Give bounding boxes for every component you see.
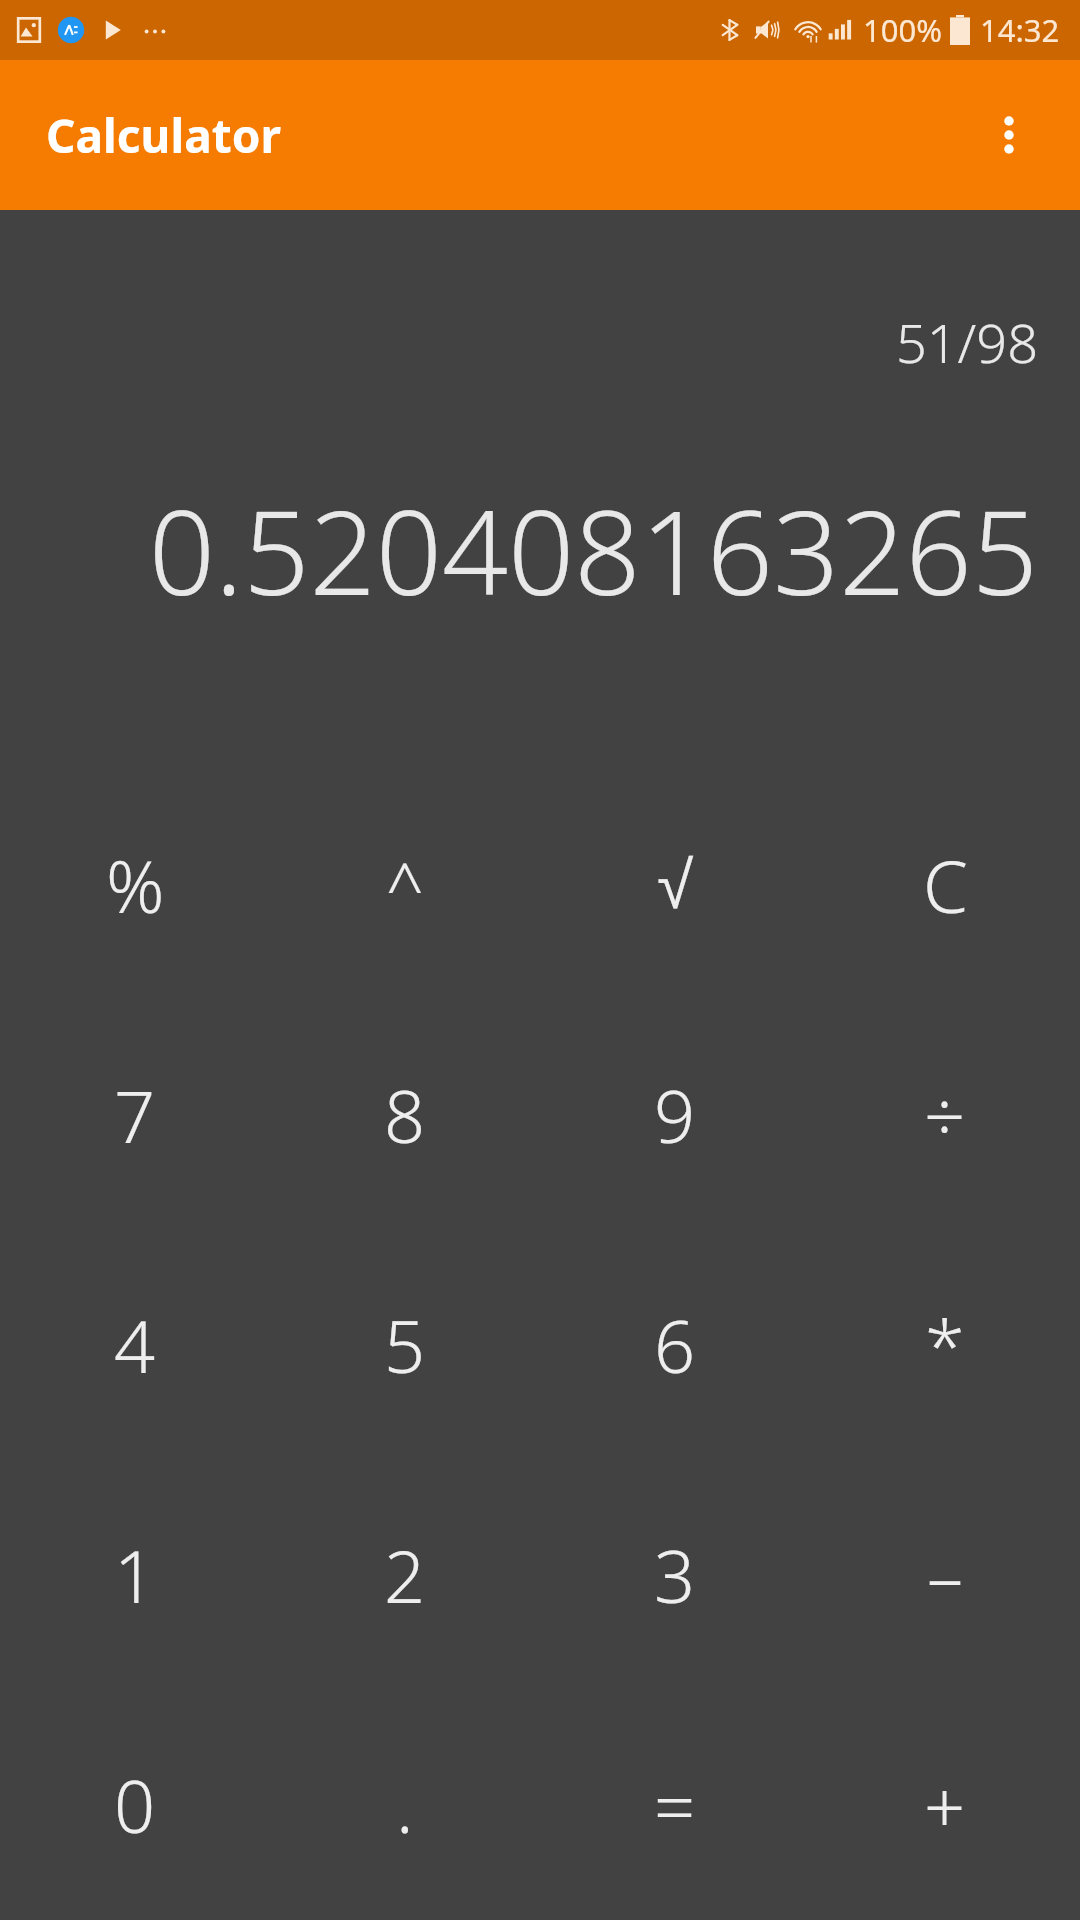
staticText: ÷	[924, 1066, 966, 1164]
button[interactable]: ^	[270, 770, 540, 1000]
staticText: –	[927, 1526, 964, 1624]
staticText: 3	[654, 1526, 696, 1624]
staticText: 100%	[863, 9, 942, 51]
staticText: 51/98	[0, 305, 1038, 379]
staticText: C	[923, 836, 968, 934]
staticText: +	[924, 1756, 966, 1854]
button[interactable]: √	[540, 770, 810, 1000]
button[interactable]: .	[270, 1690, 540, 1920]
staticText: 4	[114, 1296, 156, 1394]
staticText: 0	[114, 1756, 156, 1854]
button[interactable]: More options	[964, 90, 1054, 180]
staticText: 9	[654, 1066, 696, 1164]
staticText: Calculator	[46, 104, 281, 167]
button[interactable]: ÷	[810, 1000, 1080, 1230]
staticText: .	[396, 1756, 414, 1854]
button[interactable]: 4	[0, 1230, 270, 1460]
button[interactable]: %	[0, 770, 270, 1000]
button[interactable]: 7	[0, 1000, 270, 1230]
button[interactable]: 5	[270, 1230, 540, 1460]
staticText: 7	[114, 1066, 156, 1164]
staticText: *	[925, 1296, 965, 1394]
staticText: 0.520408163265	[0, 471, 1038, 629]
button[interactable]: =	[540, 1690, 810, 1920]
staticText: 8	[384, 1066, 426, 1164]
button[interactable]: C	[810, 770, 1080, 1000]
staticText: 14:32	[980, 9, 1060, 51]
staticText: %	[106, 836, 165, 934]
button[interactable]: 1	[0, 1460, 270, 1690]
button[interactable]: –	[810, 1460, 1080, 1690]
button[interactable]: *	[810, 1230, 1080, 1460]
staticText: 5	[384, 1296, 426, 1394]
staticText: √	[657, 848, 694, 922]
button[interactable]: 9	[540, 1000, 810, 1230]
button[interactable]: 3	[540, 1460, 810, 1690]
staticText: 6	[654, 1296, 696, 1394]
staticText: 1	[114, 1526, 156, 1624]
button[interactable]: +	[810, 1690, 1080, 1920]
staticText: ^	[386, 840, 424, 930]
button[interactable]: 8	[270, 1000, 540, 1230]
staticText: 2	[384, 1526, 426, 1624]
button[interactable]: 2	[270, 1460, 540, 1690]
button[interactable]: 0	[0, 1690, 270, 1920]
button[interactable]: 6	[540, 1230, 810, 1460]
staticText: =	[654, 1756, 696, 1854]
